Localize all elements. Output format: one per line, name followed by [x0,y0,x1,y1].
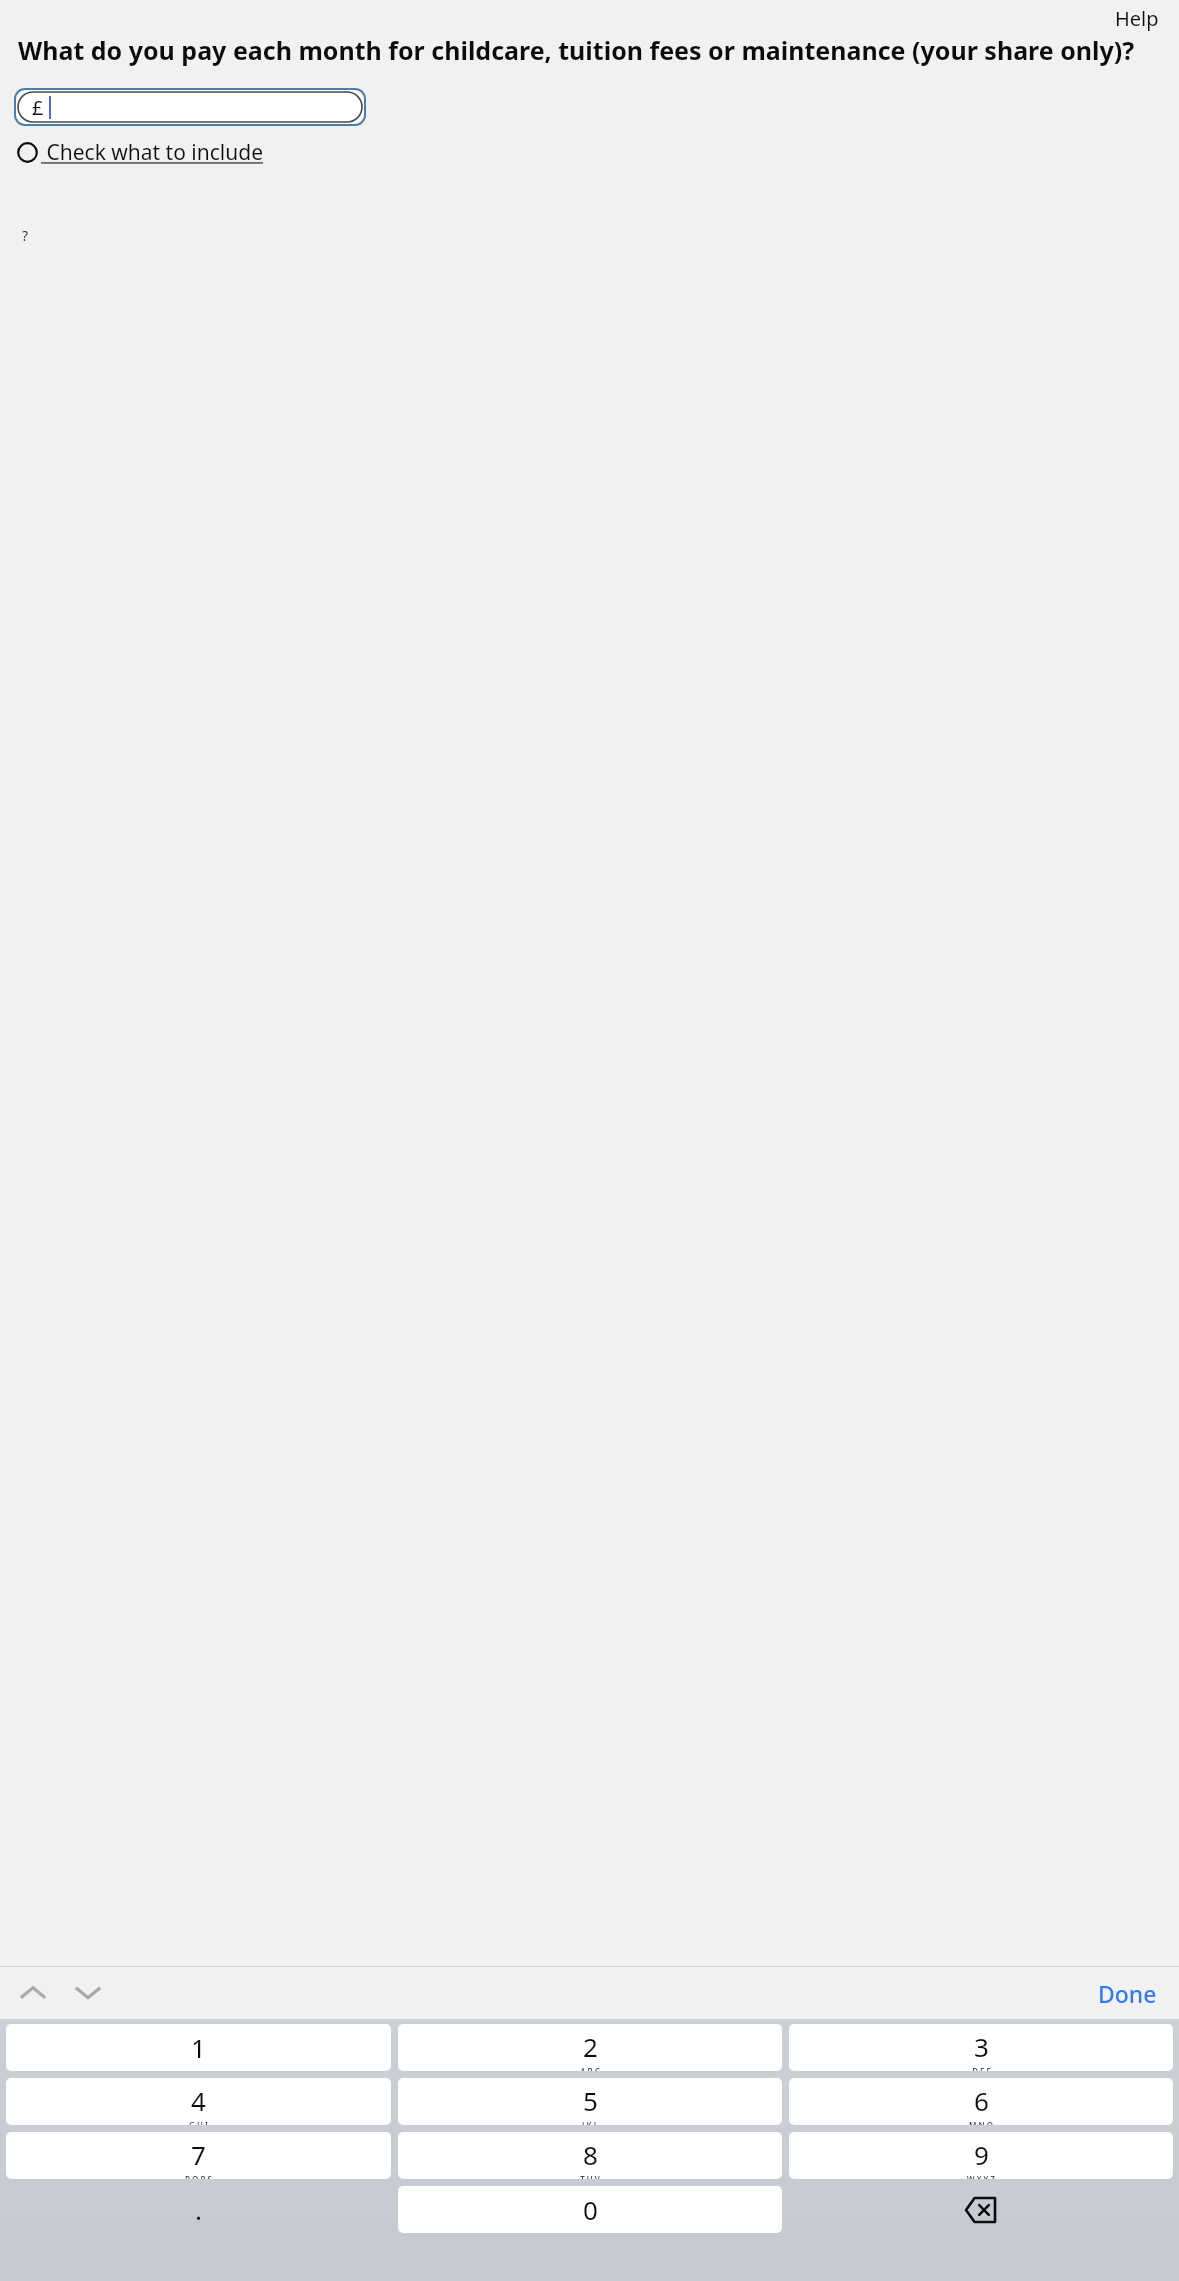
button[interactable]: 5 [398,2078,782,2125]
button[interactable]: 1 [6,2024,391,2071]
button[interactable]: 0 [398,2186,782,2233]
staticText: A B C [580,2066,600,2071]
other: Help information [17,142,38,163]
staticText: M N O [969,2120,993,2125]
button[interactable]: 4 [6,2078,391,2125]
button[interactable]: Done [1076,1972,1179,2015]
button[interactable]: £ [18,92,362,122]
staticText: . [195,2192,202,2227]
staticText: 5 [583,2083,598,2118]
button[interactable]: Backspace [789,2186,1173,2233]
staticText: 9 [974,2137,989,2172]
staticText: P Q R S [185,2174,212,2179]
staticText: Check what to include [41,138,263,167]
button[interactable]: Previous field [10,1970,56,2016]
staticText: 6 [974,2083,989,2118]
staticText: G H I [189,2120,208,2125]
staticText: 8 [583,2137,598,2172]
button[interactable]: 2 [398,2024,782,2071]
button[interactable]: Help information [17,138,263,167]
staticText: 4 [191,2083,206,2118]
staticText: 1 [191,2030,206,2065]
staticText: 0 [583,2192,598,2227]
button[interactable]: Help [1101,0,1179,40]
staticText: £ [32,94,44,121]
staticText: Done [1098,1978,1157,2009]
staticText: 2 [583,2029,598,2064]
staticText: D E F [972,2066,991,2071]
staticText: W X Y Z [967,2174,995,2179]
staticText: 3 [974,2029,989,2064]
staticText: ? [22,226,29,245]
button[interactable]: 8 [398,2132,782,2179]
button[interactable]: 7 [6,2132,391,2179]
button[interactable]: 9 [789,2132,1173,2179]
button[interactable]: 6 [789,2078,1173,2125]
button[interactable]: 3 [789,2024,1173,2071]
staticText: 7 [191,2137,206,2172]
staticText: What do you pay each month for childcare… [18,33,1151,67]
staticText: J K L [582,2120,598,2125]
button[interactable]: Next field [65,1970,111,2016]
button[interactable]: . [6,2186,391,2233]
staticText: T U V [580,2174,600,2179]
staticText: Help [1115,5,1159,32]
